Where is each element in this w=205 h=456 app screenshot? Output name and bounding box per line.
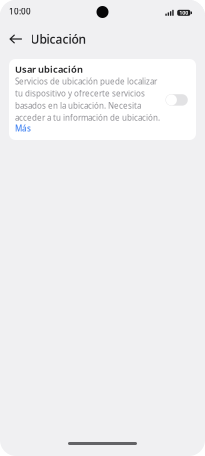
button[interactable]: Back (4, 28, 27, 50)
button[interactable]: Usar ubicación (9, 59, 188, 106)
staticText: Servicios de ubicación puede localizar t… (15, 76, 160, 123)
staticText: Ubicación (30, 31, 86, 47)
staticText: Más (15, 123, 31, 134)
staticText: 10:00 (9, 6, 31, 17)
button[interactable]: Más (15, 123, 161, 132)
staticText: 100 (179, 9, 188, 16)
staticText: Usar ubicación (15, 63, 83, 75)
